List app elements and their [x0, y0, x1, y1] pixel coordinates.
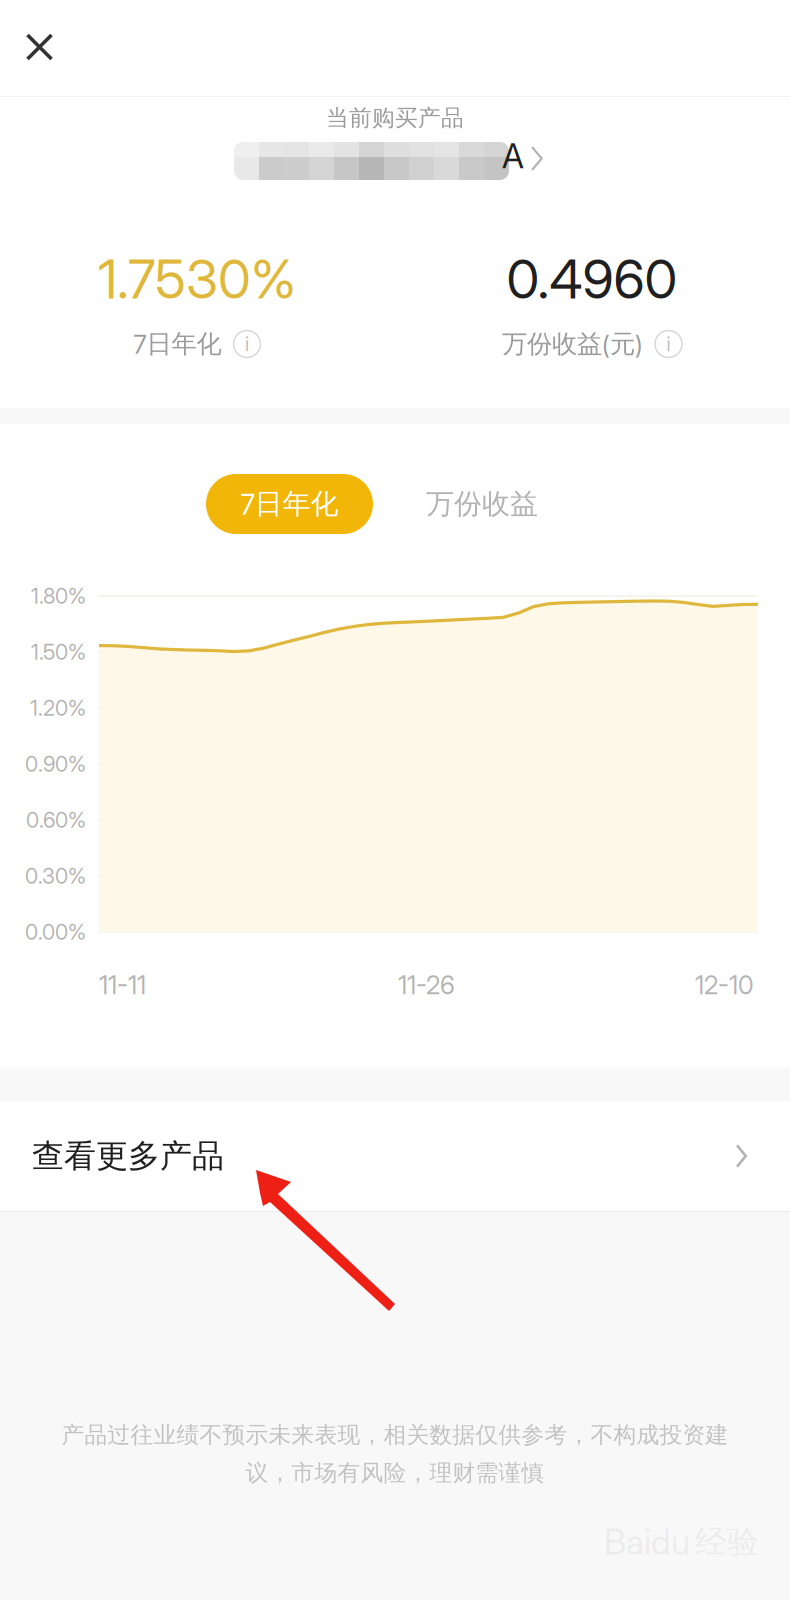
- staticText: 万份收益: [426, 486, 538, 522]
- staticText: 7日年化: [133, 328, 221, 360]
- staticText: i: [666, 332, 670, 356]
- staticText: 0.00%: [25, 919, 86, 945]
- staticText: 0.30%: [25, 863, 86, 889]
- staticText: 议，市场有风险，理财需谨慎: [245, 1459, 544, 1487]
- button[interactable]: 查看更多产品: [0, 1101, 790, 1211]
- staticText: 万份收益(元): [502, 328, 643, 360]
- button[interactable]: 万份收益: [422, 474, 542, 534]
- staticText: 经验: [695, 1522, 759, 1562]
- staticText: 11-26: [398, 970, 455, 1000]
- staticText: 产品过往业绩不预示未来表现，相关数据仅供参考，不构成投资建: [61, 1421, 728, 1449]
- staticText: 0.4960: [506, 247, 677, 311]
- staticText: 1.80%: [31, 583, 86, 609]
- staticText: A: [502, 136, 524, 176]
- staticText: 当前购买产品: [326, 104, 464, 132]
- button[interactable]: Close: [0, 0, 79, 94]
- button[interactable]: A: [234, 130, 556, 181]
- staticText: 1.50%: [31, 639, 86, 665]
- staticText: 0.90%: [25, 751, 86, 777]
- staticText: 11-11: [99, 970, 146, 1000]
- staticText: 1.20%: [30, 695, 86, 721]
- staticText: 0.60%: [26, 807, 86, 833]
- staticText: Baidu: [604, 1521, 690, 1563]
- staticText: 7日年化: [240, 486, 338, 522]
- button[interactable]: 7日年化: [206, 474, 373, 534]
- staticText: i: [245, 332, 249, 356]
- staticText: 查看更多产品: [32, 1136, 224, 1176]
- staticText: 1.7530%: [98, 247, 296, 311]
- staticText: 12-10: [695, 970, 754, 1000]
